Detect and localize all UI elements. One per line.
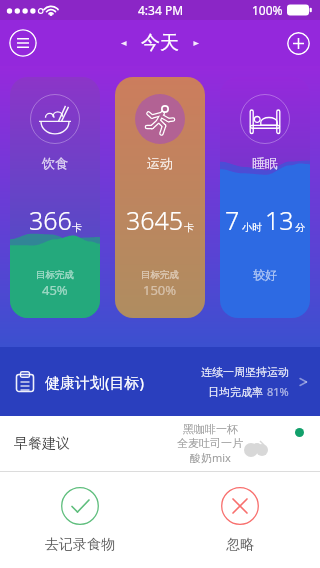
button[interactable]: Menu xyxy=(9,29,37,57)
staticText: 3645 xyxy=(126,203,184,237)
staticText: 150% xyxy=(143,281,177,299)
staticText: 7 xyxy=(225,203,240,237)
staticText: 较好 xyxy=(253,267,277,282)
staticText: 卡 xyxy=(72,221,82,234)
button[interactable]: 今天 xyxy=(119,31,201,55)
staticText: 4:34 PM xyxy=(138,2,184,18)
staticText: 366 xyxy=(29,203,72,237)
staticText: 卡 xyxy=(184,221,194,234)
staticText: 小时 xyxy=(242,221,262,234)
button[interactable]: 健康计划(目标) xyxy=(0,347,320,416)
staticText: 全麦吐司一片 xyxy=(177,436,243,450)
staticText: 运动 xyxy=(147,155,173,171)
staticText: 黑咖啡一杯 xyxy=(183,422,238,436)
staticText: 81% xyxy=(267,384,289,399)
staticText: 13 xyxy=(265,203,294,237)
button[interactable]: Add xyxy=(287,32,310,55)
staticText: 去记录食物 xyxy=(45,536,115,554)
staticText: 早餐建议 xyxy=(14,435,70,453)
staticText: 45% xyxy=(42,281,68,299)
button[interactable]: 饮食 xyxy=(10,77,100,318)
staticText: 分 xyxy=(295,221,305,234)
button[interactable]: 去记录食物 xyxy=(0,472,160,568)
button[interactable]: 运动 xyxy=(115,77,205,318)
staticText: 睡眠 xyxy=(252,155,278,171)
staticText: 酸奶mix xyxy=(190,450,231,465)
staticText: 100% xyxy=(252,2,283,18)
staticText: 目标完成 xyxy=(36,269,74,281)
staticText: 日均完成率 xyxy=(208,385,263,399)
staticText: 饮食 xyxy=(42,155,68,171)
staticText: 健康计划(目标) xyxy=(45,372,145,392)
staticText: 目标完成 xyxy=(141,269,179,281)
staticText: 连续一周坚持运动 xyxy=(201,365,289,379)
button[interactable]: 睡眠 xyxy=(220,77,310,318)
staticText: 今天 xyxy=(141,31,179,55)
button[interactable]: 忽略 xyxy=(160,472,320,568)
staticText: 忽略 xyxy=(226,536,254,554)
